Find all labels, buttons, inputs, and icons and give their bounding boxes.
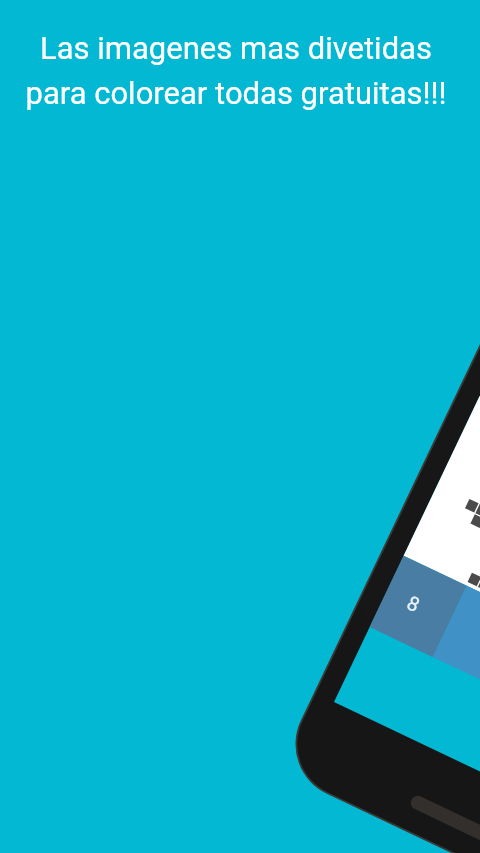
staticText: Las imagenes mas divetidas para colorear… [0,30,476,111]
staticText: 8 [403,590,424,616]
